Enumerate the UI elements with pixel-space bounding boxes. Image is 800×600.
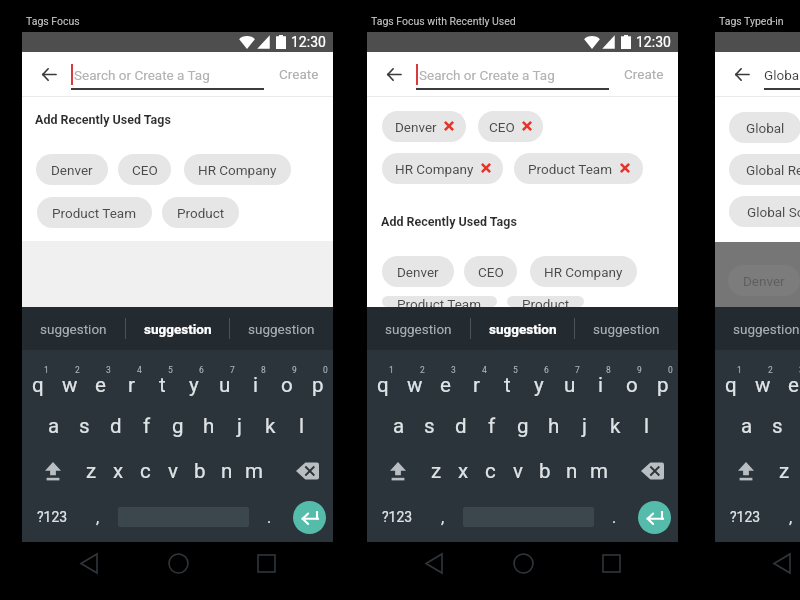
button[interactable]: l — [631, 402, 662, 446]
button[interactable]: d — [445, 402, 476, 446]
button[interactable]: HR Company — [184, 154, 291, 185]
button[interactable]: 7 — [209, 350, 240, 402]
button[interactable]: ?123 — [715, 492, 775, 542]
button[interactable]: . — [252, 492, 286, 542]
button[interactable]: g — [162, 402, 193, 446]
button[interactable]: Denver — [382, 256, 454, 287]
button[interactable]: Back — [738, 542, 800, 600]
button[interactable]: c — [132, 446, 159, 492]
button[interactable]: n — [213, 446, 240, 492]
button[interactable]: Product Team — [514, 153, 643, 184]
button[interactable]: a — [38, 402, 69, 446]
button[interactable]: f — [476, 402, 507, 446]
button[interactable]: 2 — [54, 350, 85, 402]
button[interactable]: , — [775, 492, 800, 542]
button[interactable]: 3 — [430, 350, 461, 402]
button[interactable]: s — [69, 402, 100, 446]
button[interactable]: 1 — [715, 350, 747, 402]
button[interactable]: Recents — [567, 542, 655, 600]
button[interactable]: Space — [459, 492, 597, 542]
button[interactable]: 5 — [147, 350, 178, 402]
button[interactable]: Denver — [382, 111, 466, 142]
button[interactable]: Denver — [36, 154, 108, 185]
button[interactable]: HR Company — [382, 153, 503, 184]
button[interactable]: v — [159, 446, 186, 492]
button[interactable]: Shift — [22, 446, 78, 492]
button[interactable]: m — [585, 446, 612, 492]
button[interactable]: suggestion — [126, 307, 229, 350]
button[interactable]: j — [569, 402, 600, 446]
button[interactable]: l — [286, 402, 317, 446]
button[interactable]: 3 — [778, 350, 800, 402]
button[interactable]: Global — [729, 112, 800, 143]
button[interactable]: Recents — [222, 542, 310, 600]
button[interactable]: k — [255, 402, 286, 446]
button[interactable]: 5 — [492, 350, 523, 402]
button[interactable]: Product Team — [382, 296, 497, 307]
button[interactable]: Global Reports — [729, 154, 800, 185]
button[interactable]: 6 — [523, 350, 554, 402]
button[interactable]: CEO — [118, 154, 171, 185]
button[interactable]: suggestion — [22, 307, 125, 350]
button[interactable]: 3 — [85, 350, 116, 402]
button[interactable]: Home — [479, 542, 567, 600]
button[interactable]: Backspace — [612, 446, 678, 492]
button[interactable]: f — [131, 402, 162, 446]
button[interactable]: Space — [114, 492, 252, 542]
button[interactable]: g — [507, 402, 538, 446]
button[interactable]: Back — [35, 61, 62, 88]
button[interactable]: CEO — [478, 111, 543, 142]
button[interactable]: v — [504, 446, 531, 492]
button[interactable]: Back — [45, 542, 133, 600]
button[interactable]: x — [105, 446, 132, 492]
button[interactable]: a — [731, 402, 762, 446]
button[interactable]: CEO — [464, 256, 517, 287]
button[interactable]: a — [383, 402, 414, 446]
button[interactable]: j — [224, 402, 255, 446]
button[interactable]: n — [558, 446, 585, 492]
button[interactable]: h — [538, 402, 569, 446]
button[interactable]: d — [100, 402, 131, 446]
button[interactable]: suggestion — [471, 307, 574, 350]
button[interactable]: suggestion — [715, 307, 800, 350]
button[interactable]: x — [450, 446, 477, 492]
button[interactable]: m — [240, 446, 267, 492]
button[interactable]: , — [427, 492, 459, 542]
button[interactable]: z — [771, 446, 798, 492]
button[interactable]: , — [82, 492, 114, 542]
button[interactable]: ?123 — [22, 492, 82, 542]
button[interactable]: 4 — [461, 350, 492, 402]
button[interactable]: Shift — [367, 446, 423, 492]
button[interactable]: Denver — [728, 265, 800, 296]
button[interactable]: . — [597, 492, 631, 542]
button[interactable]: suggestion — [230, 307, 333, 350]
button[interactable]: Global Sourcing — [729, 196, 800, 227]
button[interactable]: 4 — [116, 350, 147, 402]
button[interactable]: 8 — [240, 350, 271, 402]
button[interactable]: Enter — [631, 492, 678, 542]
button[interactable]: b — [531, 446, 558, 492]
button[interactable]: suggestion — [575, 307, 678, 350]
button[interactable]: h — [193, 402, 224, 446]
button[interactable]: Enter — [286, 492, 333, 542]
button[interactable]: z — [423, 446, 450, 492]
button[interactable]: 7 — [554, 350, 585, 402]
button[interactable]: 6 — [178, 350, 209, 402]
button[interactable]: 1 — [22, 350, 54, 402]
button[interactable]: Backspace — [267, 446, 333, 492]
button[interactable]: 8 — [585, 350, 616, 402]
button[interactable]: Create — [279, 66, 319, 82]
button[interactable]: Product Team — [37, 197, 152, 228]
button[interactable]: suggestion — [367, 307, 470, 350]
button[interactable]: b — [186, 446, 213, 492]
button[interactable]: 1 — [367, 350, 399, 402]
button[interactable]: 2 — [747, 350, 778, 402]
button[interactable]: Product — [162, 197, 239, 228]
button[interactable]: Back — [380, 61, 407, 88]
button[interactable]: ?123 — [367, 492, 427, 542]
button[interactable]: Shift — [715, 446, 771, 492]
button[interactable]: s — [762, 402, 793, 446]
button[interactable]: 2 — [399, 350, 430, 402]
